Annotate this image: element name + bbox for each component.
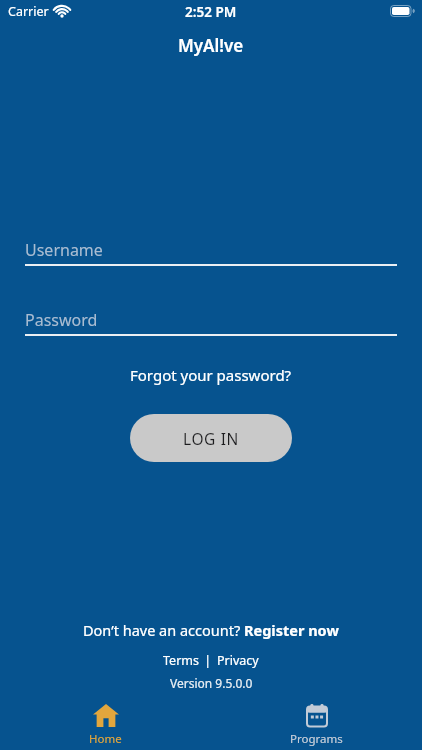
staticText: Terms bbox=[163, 652, 199, 669]
button[interactable]: Forgot your password? bbox=[126, 361, 296, 389]
staticText: Don’t have an account? Register now bbox=[83, 620, 339, 640]
staticText: Home bbox=[89, 731, 122, 747]
staticText: Username bbox=[25, 239, 103, 261]
staticText: Forgot your password? bbox=[130, 365, 292, 385]
button[interactable]: LOG IN bbox=[130, 414, 292, 462]
staticText: Version 9.5.0.0 bbox=[170, 675, 253, 691]
staticText: Privacy bbox=[217, 652, 259, 669]
button[interactable]: Terms bbox=[161, 650, 201, 671]
button[interactable]: Programs bbox=[211, 700, 422, 747]
staticText: LOG IN bbox=[183, 428, 239, 449]
staticText: Password bbox=[25, 309, 98, 331]
staticText: Programs bbox=[290, 731, 343, 747]
staticText: MyAl!ve bbox=[178, 34, 244, 57]
staticText: 2:52 PM bbox=[185, 3, 237, 21]
button[interactable]: Don’t have an account? Register now bbox=[81, 618, 341, 642]
button[interactable]: Home bbox=[0, 700, 211, 747]
staticText: Carrier bbox=[8, 3, 49, 20]
staticText: | bbox=[201, 652, 215, 669]
button[interactable]: Privacy bbox=[215, 650, 261, 671]
